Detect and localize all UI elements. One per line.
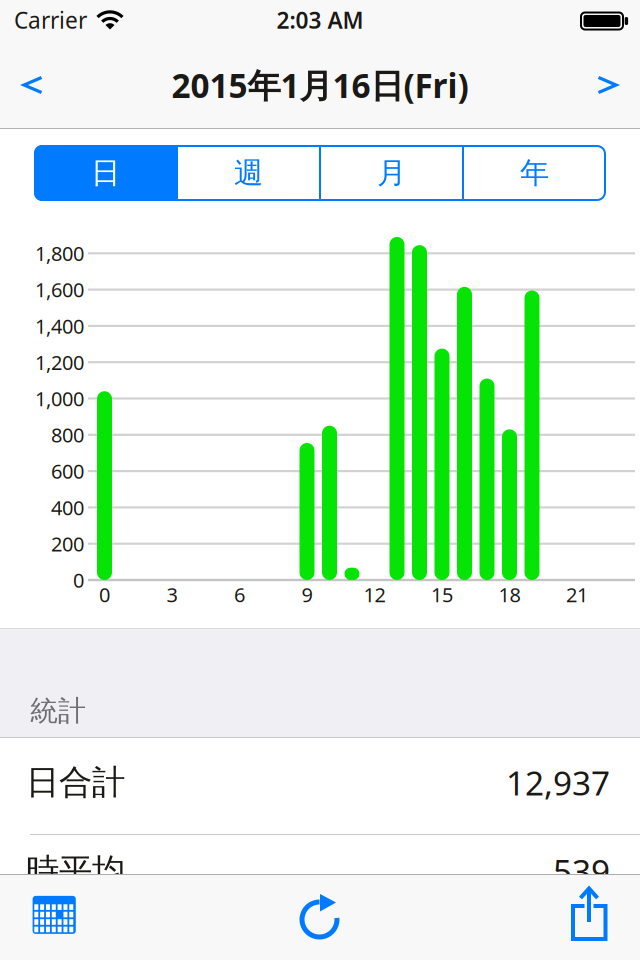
button[interactable]: Next day [586, 75, 628, 95]
staticText: 2015年1月16日(Fri) [171, 63, 468, 107]
staticText: 15 [431, 581, 453, 608]
staticText: 1,800 [35, 240, 84, 267]
staticText: 3 [166, 581, 177, 608]
staticText: 539 [553, 849, 610, 893]
button[interactable]: Previous day [12, 75, 54, 95]
button[interactable]: Refresh [299, 891, 341, 943]
staticText: 9 [301, 581, 312, 608]
staticText: 1,400 [35, 313, 84, 339]
staticText: 1,000 [35, 385, 84, 412]
staticText: 600 [51, 458, 84, 484]
staticText: 800 [51, 421, 84, 448]
button[interactable]: 月 [320, 145, 463, 201]
button[interactable]: Share [570, 886, 608, 942]
staticText: 時平均 [26, 850, 125, 891]
staticText: 1,600 [35, 276, 84, 303]
button[interactable]: 週 [177, 145, 320, 201]
staticText: 0 [73, 567, 84, 593]
staticText: 400 [51, 494, 84, 521]
staticText: 年 [520, 155, 549, 191]
staticText: 1,200 [35, 349, 84, 375]
staticText: 月 [377, 155, 406, 191]
button[interactable]: 日 [34, 145, 177, 201]
staticText: 6 [234, 581, 245, 608]
staticText: 12,937 [506, 760, 610, 805]
staticText: 18 [498, 581, 520, 608]
staticText: 200 [51, 530, 84, 557]
staticText: 日 [91, 155, 120, 191]
button[interactable]: Calendar [33, 896, 76, 934]
staticText: 日合計 [26, 762, 125, 803]
staticText: Carrier [14, 5, 87, 35]
staticText: 0 [99, 581, 110, 608]
staticText: 統計 [30, 694, 86, 728]
staticText: 週 [234, 155, 263, 191]
button[interactable]: 年 [463, 145, 606, 201]
staticText: 12 [363, 581, 385, 608]
staticText: 21 [566, 581, 588, 608]
staticText: 2:03 AM [276, 5, 363, 35]
